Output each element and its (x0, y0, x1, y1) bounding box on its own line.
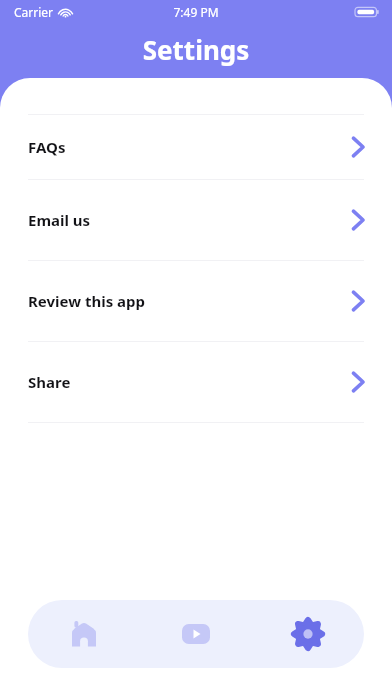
button[interactable]: Share (0, 342, 392, 422)
staticText: FAQs (28, 137, 66, 157)
button[interactable]: Settings (252, 600, 364, 668)
button[interactable]: Email us (0, 180, 392, 260)
staticText: Carrier (14, 4, 54, 20)
staticText: Email us (28, 210, 91, 230)
button[interactable]: Videos (140, 600, 252, 668)
button[interactable]: FAQs (0, 115, 392, 179)
button[interactable]: Home (28, 600, 140, 668)
button[interactable]: Review this app (0, 261, 392, 341)
staticText: Review this app (28, 291, 146, 311)
staticText: Share (28, 372, 71, 392)
staticText: 7:49 PM (173, 4, 219, 20)
staticText: Settings (0, 32, 392, 67)
